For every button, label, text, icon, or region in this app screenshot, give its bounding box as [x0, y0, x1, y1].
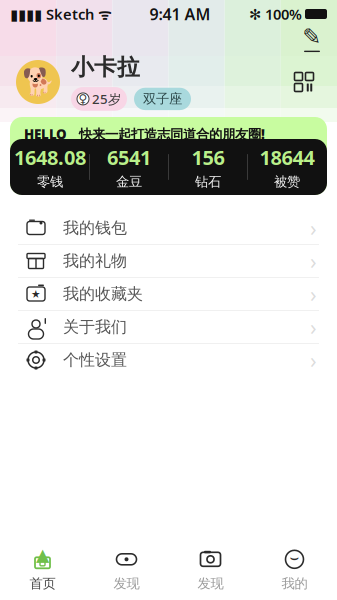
staticText: 我的钱包 — [63, 218, 127, 238]
staticText: ★ — [31, 288, 41, 300]
staticText: ▮▮▮▮ Sketch — [10, 4, 94, 24]
staticText: › — [310, 313, 317, 341]
button[interactable]: ▲ — [0, 544, 84, 596]
staticText: 我的收藏夹 — [63, 284, 143, 304]
staticText: 个性设置 — [63, 350, 127, 370]
staticText: › — [310, 214, 317, 242]
staticText: 156 — [191, 144, 224, 171]
staticText: 快来一起打造志同道合的朋友圈! — [67, 125, 265, 143]
staticText: 9:41 AM — [149, 3, 210, 25]
staticText: ✻ 100% — [249, 4, 302, 24]
button[interactable]: 关于我们 — [0, 311, 337, 343]
button[interactable]: 发现 — [84, 544, 168, 596]
button[interactable]: 发现 — [168, 544, 252, 596]
staticText: 18644 — [259, 144, 314, 171]
staticText: 6541 — [107, 144, 151, 171]
staticText: ▲ — [36, 545, 49, 565]
button[interactable]: ⌣ — [252, 544, 336, 596]
staticText: 首页 — [29, 575, 55, 592]
staticText: ᯤ — [94, 4, 111, 24]
button[interactable]: 个性设置 — [0, 344, 337, 376]
staticText: 🐕 — [21, 67, 54, 97]
button[interactable]: 我的礼物 — [0, 245, 337, 277]
staticText: ⌣ — [289, 551, 299, 565]
staticText: 零钱 — [37, 174, 63, 190]
staticText: 金豆 — [116, 174, 142, 190]
staticText: › — [310, 280, 317, 308]
staticText: 关于我们 — [63, 317, 127, 337]
staticText: 双子座 — [143, 91, 182, 107]
staticText: 发现 — [113, 575, 139, 592]
staticText: HELLO — [24, 125, 67, 143]
staticText: › — [310, 247, 317, 275]
button[interactable]: My QR code — [287, 65, 321, 99]
staticText: ✎ — [302, 24, 321, 50]
button[interactable]: 我的钱包 — [0, 212, 337, 244]
staticText: 1648.08 — [14, 144, 86, 171]
button[interactable]: Edit profile — [295, 25, 329, 51]
staticText: › — [310, 346, 317, 374]
button[interactable]: ★ — [0, 278, 337, 310]
staticText: ♀ — [78, 92, 87, 106]
staticText: 我的礼物 — [63, 251, 127, 271]
staticText: 25岁 — [92, 90, 121, 108]
staticText: 钻石 — [195, 174, 221, 190]
staticText: 被赞 — [274, 174, 300, 190]
staticText: 发现 — [197, 575, 223, 592]
staticText: 小卡拉 — [71, 53, 140, 81]
staticText: 我的 — [281, 575, 307, 592]
